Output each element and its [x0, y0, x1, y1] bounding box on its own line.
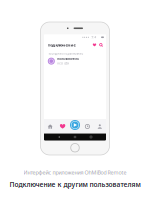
staticText: Подключение — [47, 42, 75, 48]
button[interactable]: History — [81, 119, 94, 133]
staticText: Интерфейс приложения OhMiBod Remote — [23, 169, 126, 176]
staticText: Подключение к другим пользователям — [9, 180, 140, 189]
button[interactable]: Favourites — [91, 43, 98, 47]
button[interactable]: Search — [98, 43, 106, 47]
staticText: Последние подключения — [47, 52, 83, 55]
staticText: не в сети — [57, 62, 69, 65]
button[interactable]: Home — [44, 119, 56, 133]
staticText: пользователь — [57, 57, 79, 61]
button[interactable]: Favourites — [56, 119, 69, 133]
button[interactable]: Play — [70, 121, 80, 131]
button[interactable]: Play — [69, 119, 81, 133]
button[interactable]: пользователь — [44, 55, 106, 67]
staticText: 9:41 — [91, 35, 98, 39]
button[interactable]: Profile — [94, 119, 106, 133]
